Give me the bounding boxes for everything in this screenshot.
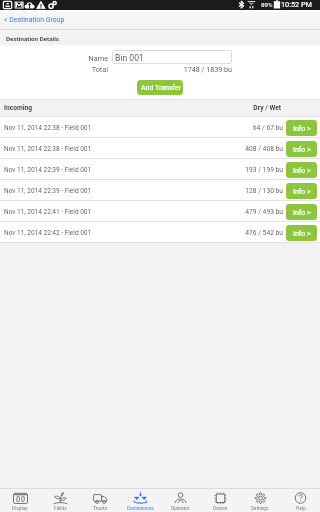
staticText: Fields [54, 506, 67, 512]
button[interactable]: Nov 11, 2014 22:41 - Field 001 [0, 201, 320, 222]
staticText: Info > [293, 124, 311, 132]
button[interactable]: Device [200, 488, 240, 512]
staticText: Info > [293, 229, 311, 237]
staticText: Nov 11, 2014 22:38 - Field 001 [4, 145, 92, 153]
button[interactable]: Info > [286, 225, 317, 241]
staticText: Destination Details [6, 35, 60, 42]
button[interactable]: Destinations [120, 488, 160, 512]
staticText: Nov 11, 2014 22:38 - Field 001 [4, 124, 92, 132]
staticText: 1748 / 1839 bu [152, 65, 232, 73]
staticText: Destinations [127, 506, 154, 512]
staticText: 479 / 493 bu [213, 208, 283, 216]
button[interactable]: Help [280, 488, 320, 512]
staticText: 64 / 67 bu [213, 124, 283, 132]
staticText: Display [12, 506, 28, 512]
button[interactable]: Nov 11, 2014 22:42 - Field 001 [0, 222, 320, 243]
staticText: 10:52 PM [281, 0, 312, 9]
button[interactable]: Display [0, 488, 40, 512]
button[interactable]: Nov 11, 2014 22:39 - Field 001 [0, 180, 320, 201]
button[interactable]: Nov 11, 2014 22:38 - Field 001 [0, 138, 320, 159]
staticText: Dry / Wet [221, 104, 281, 112]
staticText: Help [296, 506, 306, 512]
button[interactable]: Add Transfer [137, 80, 183, 95]
button[interactable]: Info > [286, 162, 317, 178]
button[interactable]: Info > [286, 120, 317, 136]
staticText: Info > [293, 145, 311, 153]
button[interactable]: Info > [286, 183, 317, 199]
staticText: 89% [261, 1, 273, 8]
staticText: 193 / 199 bu [213, 166, 283, 174]
staticText: Info > [293, 187, 311, 195]
staticText: Device [213, 506, 228, 512]
staticText: Info > [293, 166, 311, 174]
button[interactable]: Fields [40, 488, 80, 512]
button[interactable]: Nov 11, 2014 22:39 - Field 001 [0, 159, 320, 180]
button[interactable]: Info > [286, 204, 317, 220]
staticText: < Destination Group [4, 16, 65, 24]
button[interactable]: Info > [286, 141, 317, 157]
button[interactable]: Settings [240, 488, 280, 512]
staticText: 128 / 130 bu [213, 187, 283, 195]
staticText: Total [48, 65, 108, 74]
button[interactable]: Nov 11, 2014 22:38 - Field 001 [0, 117, 320, 138]
button[interactable]: Operator [160, 488, 200, 512]
staticText: Incoming [4, 104, 33, 112]
staticText: Settings [251, 506, 269, 512]
staticText: Bin 001 [115, 53, 144, 63]
staticText: Info > [293, 208, 311, 216]
staticText: Nov 11, 2014 22:39 - Field 001 [4, 187, 92, 195]
staticText: Nov 11, 2014 22:39 - Field 001 [4, 166, 92, 174]
staticText: Operator [171, 506, 190, 512]
staticText: Trucks [93, 506, 108, 512]
staticText: 476 / 542 bu [213, 229, 283, 237]
staticText: 408 / 408 bu [213, 145, 283, 153]
staticText: Nov 11, 2014 22:42 - Field 001 [4, 229, 92, 237]
staticText: Add Transfer [141, 84, 181, 92]
button[interactable]: Bin 001 [112, 50, 232, 64]
staticText: Nov 11, 2014 22:41 - Field 001 [4, 208, 92, 216]
button[interactable]: Trucks [80, 488, 120, 512]
button[interactable]: < Destination Group [0, 10, 320, 30]
staticText: Name [48, 54, 108, 63]
